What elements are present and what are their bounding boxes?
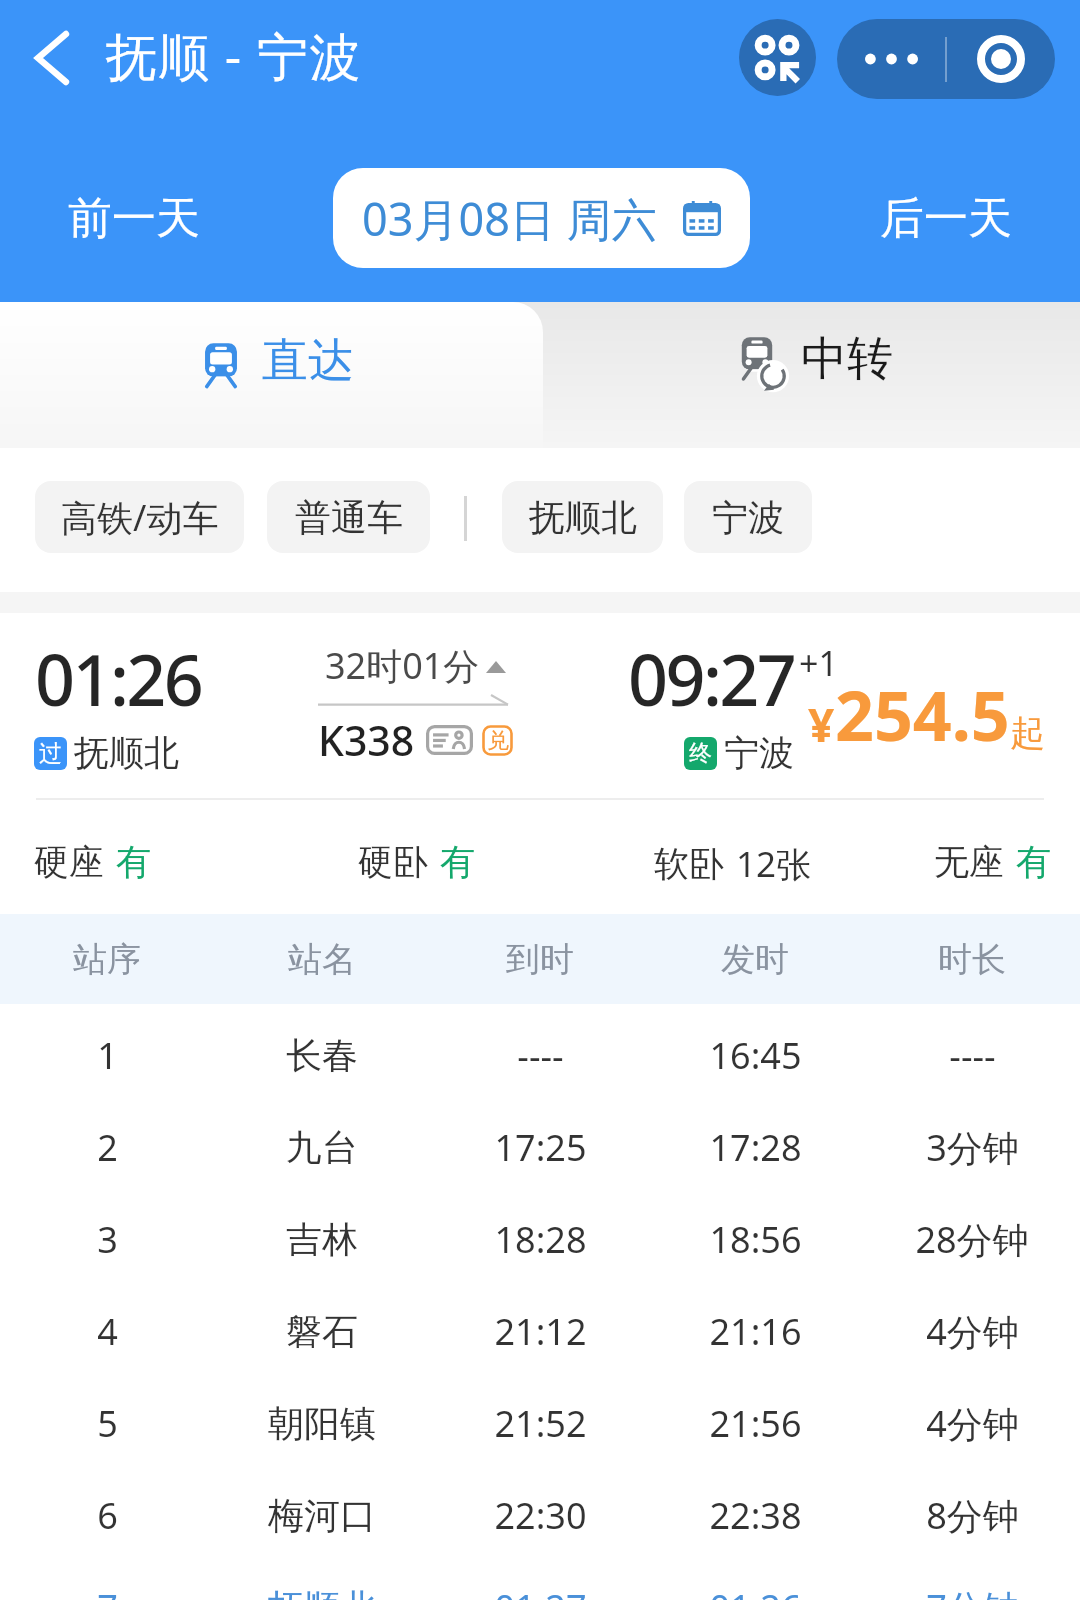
- staticText: 软卧: [654, 842, 724, 886]
- staticText: 九台: [286, 1125, 358, 1170]
- staticText: 中转: [801, 330, 893, 388]
- staticText: 过: [39, 739, 62, 768]
- staticText: 高铁/动车: [61, 493, 219, 542]
- staticText: 01:26: [35, 631, 202, 726]
- staticText: 抚顺北: [268, 1585, 376, 1600]
- staticText: 2: [97, 1123, 118, 1172]
- button[interactable]: 2: [0, 1101, 1080, 1193]
- staticText: 17:25: [494, 1123, 587, 1172]
- staticText: 后一天: [880, 191, 1012, 246]
- button[interactable]: 直达: [0, 302, 543, 448]
- staticText: 抚顺北: [74, 731, 179, 775]
- staticText: 硬卧: [358, 840, 428, 884]
- button[interactable]: Mini program menu: [739, 19, 816, 96]
- button[interactable]: 4: [0, 1285, 1080, 1377]
- button[interactable]: Close: [947, 19, 1055, 99]
- staticText: 时长: [938, 938, 1006, 981]
- staticText: 5: [97, 1399, 118, 1448]
- staticText: 梅河口: [268, 1493, 376, 1538]
- staticText: 18:56: [709, 1215, 802, 1264]
- button[interactable]: 1: [0, 1009, 1080, 1101]
- staticText: 4分钟: [926, 1399, 1019, 1448]
- staticText: ----: [517, 1031, 564, 1080]
- staticText: 22:30: [494, 1491, 587, 1540]
- staticText: 起: [1010, 711, 1045, 755]
- staticText: 磐石: [286, 1309, 358, 1354]
- staticText: 前一天: [68, 191, 200, 246]
- staticText: 终: [689, 739, 712, 768]
- staticText: 01:27: [494, 1583, 587, 1600]
- staticText: 21:16: [709, 1307, 802, 1356]
- staticText: K338: [318, 712, 415, 768]
- staticText: 6: [97, 1491, 118, 1540]
- staticText: 21:52: [494, 1399, 587, 1448]
- staticText: 长春: [286, 1033, 358, 1078]
- staticText: 09:27: [628, 631, 795, 726]
- button[interactable]: 3: [0, 1193, 1080, 1285]
- staticText: 有: [116, 840, 151, 884]
- staticText: 宁波: [712, 495, 784, 540]
- button[interactable]: 高铁/动车: [35, 481, 244, 553]
- button[interactable]: 抚顺北: [502, 481, 663, 553]
- staticText: 7: [97, 1583, 118, 1600]
- staticText: 朝阳镇: [268, 1401, 376, 1446]
- staticText: 1: [97, 1031, 118, 1080]
- staticText: 有: [440, 840, 475, 884]
- staticText: 3分钟: [926, 1123, 1019, 1172]
- staticText: ----: [949, 1031, 996, 1080]
- staticText: +1: [799, 640, 838, 686]
- button[interactable]: 7: [0, 1561, 1080, 1600]
- staticText: 无座: [934, 840, 1004, 884]
- staticText: ¥: [808, 693, 835, 756]
- staticText: 01:26: [709, 1583, 802, 1600]
- staticText: 21:12: [494, 1307, 587, 1356]
- staticText: 7分钟: [926, 1583, 1019, 1600]
- staticText: 22:38: [709, 1491, 802, 1540]
- button[interactable]: 03月08日 周六: [333, 168, 750, 268]
- button[interactable]: 6: [0, 1469, 1080, 1561]
- staticText: 254.5: [835, 668, 1010, 761]
- staticText: 4: [97, 1307, 118, 1356]
- staticText: 8分钟: [926, 1491, 1019, 1540]
- button[interactable]: 宁波: [684, 481, 812, 553]
- staticText: 宁波: [724, 731, 794, 775]
- staticText: 3: [97, 1215, 118, 1264]
- staticText: 普通车: [295, 495, 403, 540]
- staticText: 直达: [262, 332, 354, 390]
- staticText: 21:56: [709, 1399, 802, 1448]
- staticText: 兑: [487, 727, 509, 755]
- staticText: 有: [1016, 840, 1051, 884]
- staticText: 32时01分: [325, 641, 480, 690]
- staticText: 站序: [73, 938, 141, 981]
- staticText: 吉林: [286, 1217, 358, 1262]
- staticText: 抚顺北: [529, 495, 637, 540]
- staticText: 抚顺 - 宁波: [106, 20, 362, 90]
- button[interactable]: More: [837, 19, 945, 99]
- staticText: 4分钟: [926, 1307, 1019, 1356]
- staticText: 站名: [288, 938, 356, 981]
- button[interactable]: 后一天: [860, 174, 1032, 262]
- staticText: 16:45: [709, 1031, 802, 1080]
- staticText: 发时: [721, 938, 789, 981]
- button[interactable]: Back: [11, 17, 93, 99]
- button[interactable]: 中转: [737, 333, 893, 391]
- staticText: 到时: [506, 938, 574, 981]
- button[interactable]: 前一天: [48, 174, 220, 262]
- staticText: 28分钟: [915, 1215, 1029, 1264]
- button[interactable]: 普通车: [267, 481, 430, 553]
- button[interactable]: 5: [0, 1377, 1080, 1469]
- button[interactable]: 01:26: [0, 613, 1080, 914]
- staticText: 硬座: [34, 840, 104, 884]
- staticText: 18:28: [494, 1215, 587, 1264]
- staticText: 17:28: [709, 1123, 802, 1172]
- staticText: 12张: [736, 840, 812, 888]
- staticText: 03月08日 周六: [362, 188, 657, 249]
